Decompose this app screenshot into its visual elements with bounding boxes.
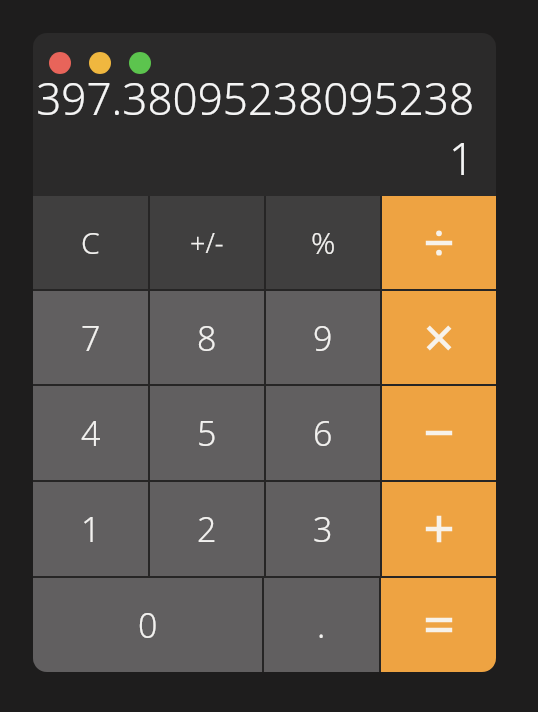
staticText: 5 [197,410,217,456]
staticText: 397.380952380952381 [33,68,474,188]
button[interactable]: 6 [266,386,380,480]
button[interactable]: Minus [382,386,496,480]
button[interactable]: 5 [150,386,264,480]
button[interactable]: Multiply [382,291,496,384]
button[interactable]: 7 [33,291,148,384]
button[interactable]: . [264,578,379,672]
button[interactable]: 1 [33,482,148,576]
button[interactable]: 9 [266,291,380,384]
button[interactable]: 2 [150,482,264,576]
button[interactable]: 3 [266,482,380,576]
button[interactable]: 8 [150,291,264,384]
staticText: 6 [313,410,333,456]
staticText: 8 [197,315,217,361]
button[interactable]: 4 [33,386,148,480]
button[interactable]: Divide [382,196,496,289]
staticText: 9 [313,315,333,361]
staticText: 3 [313,506,333,552]
staticText: C [81,222,100,263]
button[interactable]: Equals [381,578,496,672]
staticText: 7 [81,315,101,361]
button[interactable]: Zoom [129,52,151,74]
button[interactable]: Minimize [89,52,111,74]
button[interactable]: +/- [150,196,264,289]
button[interactable]: Close [49,52,71,74]
button[interactable]: C [33,196,148,289]
staticText: % [311,222,336,263]
staticText: 0 [138,602,158,648]
staticText: 2 [197,506,217,552]
button[interactable]: Plus [382,482,496,576]
button[interactable]: % [266,196,380,289]
staticText: +/- [190,224,224,261]
staticText: . [317,602,326,648]
staticText: 4 [81,410,101,456]
button[interactable]: 0 [33,578,262,672]
staticText: 1 [81,506,101,552]
